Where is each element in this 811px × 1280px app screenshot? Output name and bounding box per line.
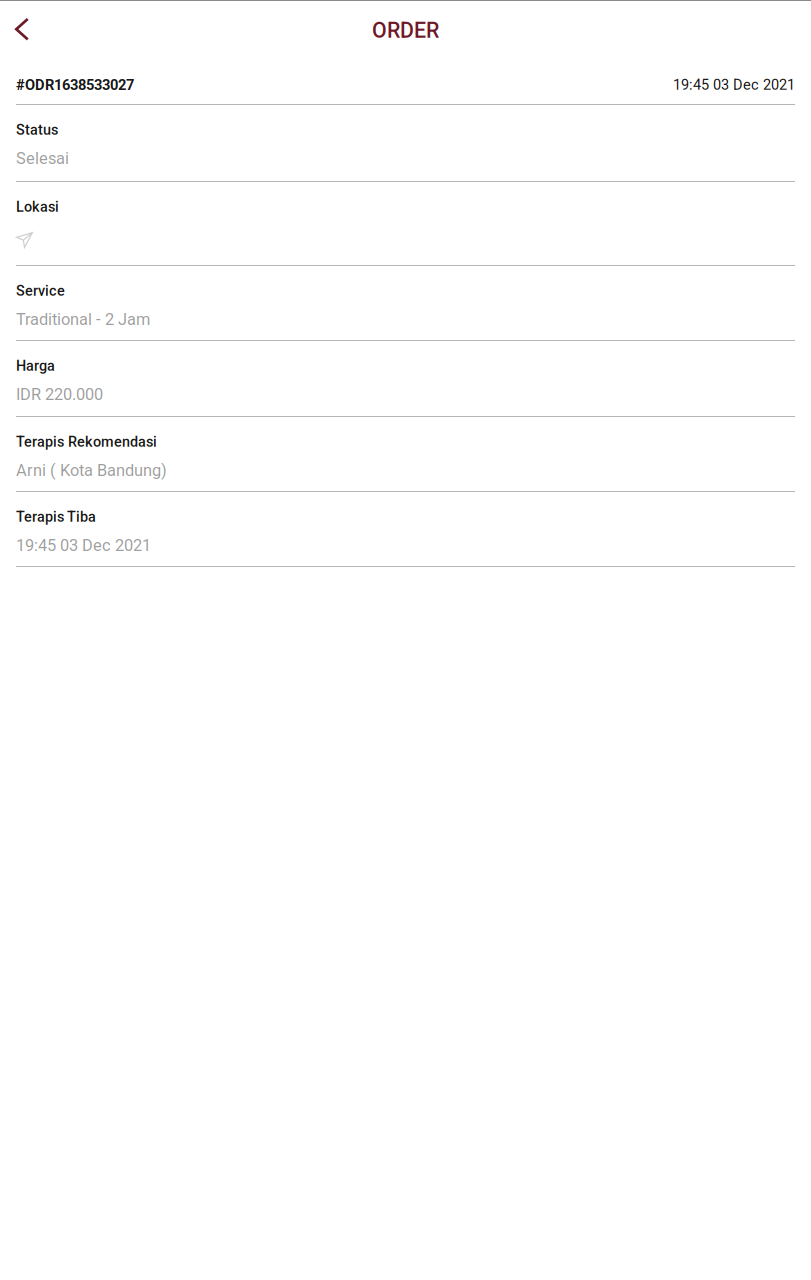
- button[interactable]: Back: [0, 8, 45, 52]
- staticText: Service: [16, 282, 65, 299]
- staticText: Selesai: [16, 149, 69, 168]
- staticText: 19:45 03 Dec 2021: [16, 536, 151, 555]
- staticText: Traditional - 2 Jam: [16, 310, 150, 329]
- staticText: Arni ( Kota Bandung): [16, 461, 167, 480]
- staticText: IDR 220.000: [16, 385, 103, 404]
- staticText: Lokasi: [16, 198, 59, 215]
- staticText: Harga: [16, 357, 55, 374]
- staticText: Terapis Tiba: [16, 508, 96, 525]
- staticText: 19:45 03 Dec 2021: [673, 76, 795, 93]
- staticText: Terapis Rekomendasi: [16, 433, 157, 450]
- staticText: Status: [16, 121, 58, 138]
- staticText: #ODR1638533027: [16, 76, 134, 93]
- staticText: ORDER: [372, 18, 439, 43]
